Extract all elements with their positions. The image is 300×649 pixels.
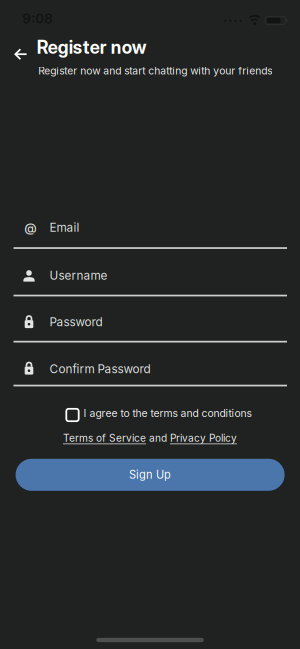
staticText: I agree to the terms and conditions <box>83 407 251 420</box>
button[interactable]: Terms of Service <box>63 432 146 444</box>
staticText: Email <box>49 220 79 234</box>
button[interactable]: Privacy Policy <box>170 432 237 444</box>
staticText: Terms of Service <box>63 432 146 444</box>
staticText: Username <box>49 268 107 282</box>
staticText: 9:08 <box>22 11 53 27</box>
staticText: Privacy Policy <box>170 432 237 444</box>
staticText: Register now <box>37 36 147 58</box>
button[interactable]: Back <box>4 37 38 71</box>
staticText: Password <box>49 315 102 329</box>
staticText: Register now and start chatting with you… <box>38 64 272 77</box>
staticText: and <box>149 432 167 444</box>
button[interactable]: Sign Up <box>16 459 285 491</box>
button[interactable]: I agree to the terms and conditions <box>65 407 252 422</box>
staticText: @ <box>24 220 36 236</box>
staticText: Confirm Password <box>49 362 150 376</box>
staticText: Sign Up <box>129 468 171 481</box>
